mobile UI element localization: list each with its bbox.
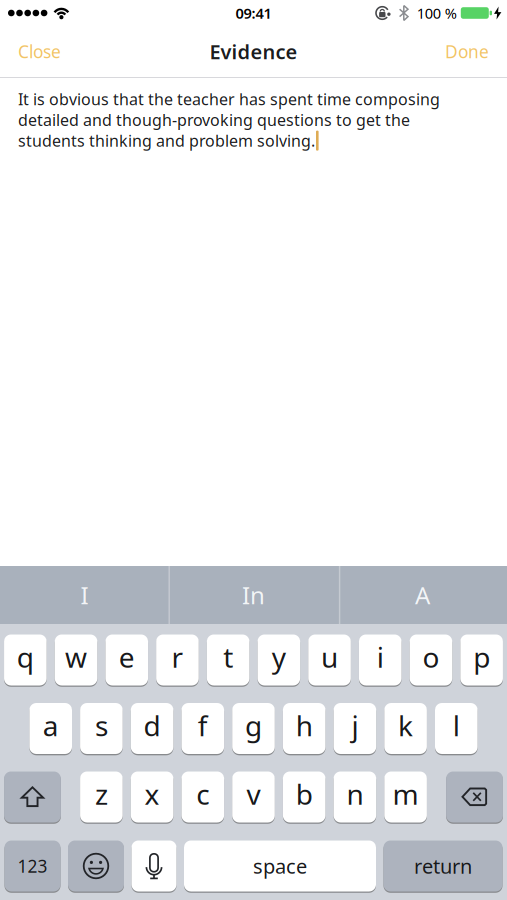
staticText: h bbox=[296, 707, 313, 744]
staticText: l bbox=[453, 707, 460, 744]
staticText: t bbox=[223, 638, 233, 675]
staticText: b bbox=[296, 775, 313, 812]
staticText: z bbox=[95, 775, 108, 812]
button[interactable]: e bbox=[105, 634, 148, 686]
button[interactable]: l bbox=[435, 702, 478, 755]
button[interactable]: I bbox=[0, 566, 169, 624]
staticText: w bbox=[65, 638, 87, 675]
button[interactable]: p bbox=[460, 634, 503, 686]
button[interactable]: c bbox=[181, 771, 224, 823]
staticText: k bbox=[398, 707, 413, 744]
staticText: It is obvious that the teacher has spent… bbox=[18, 88, 440, 110]
button[interactable]: space bbox=[184, 840, 376, 892]
staticText: j bbox=[351, 707, 358, 744]
staticText: i bbox=[377, 638, 384, 675]
button[interactable]: i bbox=[359, 634, 401, 686]
button[interactable]: s bbox=[80, 702, 123, 755]
staticText: g bbox=[245, 707, 262, 744]
button[interactable]: u bbox=[308, 634, 351, 686]
staticText: Done bbox=[445, 40, 489, 63]
button[interactable]: o bbox=[410, 634, 452, 686]
button[interactable]: x bbox=[131, 771, 173, 823]
staticText: c bbox=[196, 775, 209, 812]
button[interactable]: Close bbox=[18, 40, 61, 63]
button[interactable]: b bbox=[283, 771, 325, 823]
button[interactable]: a bbox=[29, 702, 72, 755]
button[interactable]: y bbox=[257, 634, 300, 686]
staticText: detailed and though-provoking questions … bbox=[18, 109, 410, 130]
staticText: 123 bbox=[17, 854, 47, 877]
button[interactable]: Done bbox=[445, 40, 489, 63]
button[interactable]: q bbox=[4, 634, 47, 686]
staticText: f bbox=[198, 707, 208, 744]
button[interactable]: 123 bbox=[4, 840, 60, 892]
staticText: space bbox=[253, 853, 307, 879]
button[interactable]: t bbox=[207, 634, 249, 686]
staticText: return bbox=[414, 853, 472, 879]
staticText: p bbox=[473, 638, 490, 675]
staticText: e bbox=[119, 638, 135, 675]
staticText: I bbox=[80, 579, 88, 611]
button[interactable]: h bbox=[283, 702, 325, 755]
button[interactable]: v bbox=[232, 771, 275, 823]
button[interactable]: f bbox=[181, 702, 224, 755]
button[interactable]: g bbox=[232, 702, 275, 755]
button[interactable]: j bbox=[334, 702, 376, 755]
staticText: d bbox=[144, 707, 161, 744]
staticText: n bbox=[346, 775, 363, 812]
staticText: q bbox=[17, 638, 34, 675]
button[interactable]: Delete bbox=[446, 771, 503, 823]
button[interactable]: n bbox=[334, 771, 376, 823]
staticText: y bbox=[272, 638, 286, 675]
staticText: m bbox=[393, 775, 419, 812]
staticText: r bbox=[171, 638, 183, 675]
staticText: In bbox=[242, 579, 265, 611]
staticText: u bbox=[321, 638, 338, 675]
staticText: 09:41 bbox=[235, 3, 271, 23]
staticText: v bbox=[246, 775, 260, 812]
button[interactable]: w bbox=[55, 634, 97, 686]
staticText: A bbox=[415, 579, 430, 611]
button[interactable]: A bbox=[338, 566, 507, 624]
button[interactable]: d bbox=[131, 702, 173, 755]
button[interactable]: In bbox=[169, 566, 338, 624]
button[interactable]: return bbox=[383, 840, 502, 892]
button[interactable]: r bbox=[156, 634, 199, 686]
staticText: 100 % bbox=[417, 3, 457, 23]
staticText: Close bbox=[18, 40, 61, 63]
button[interactable]: Emoji bbox=[68, 840, 124, 892]
button[interactable]: Shift bbox=[4, 771, 61, 823]
button[interactable]: m bbox=[384, 771, 427, 823]
staticText: s bbox=[95, 707, 108, 744]
staticText: x bbox=[145, 775, 160, 812]
button[interactable]: k bbox=[384, 702, 427, 755]
staticText: a bbox=[43, 707, 59, 744]
staticText: Evidence bbox=[209, 38, 297, 65]
staticText: students thinking and problem solving. bbox=[18, 130, 315, 151]
button[interactable]: Dictate bbox=[131, 840, 176, 892]
staticText: o bbox=[422, 638, 439, 675]
button[interactable]: z bbox=[80, 771, 123, 823]
